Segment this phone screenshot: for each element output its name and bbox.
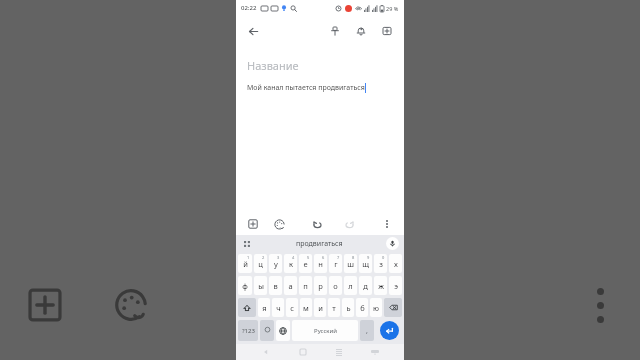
button[interactable]: з <box>374 254 387 273</box>
button[interactable]: к <box>284 254 297 273</box>
staticText: 3 <box>277 255 280 260</box>
staticText: р <box>318 281 323 291</box>
button[interactable]: Archive <box>377 21 397 41</box>
button[interactable]: н <box>314 254 327 273</box>
staticText: а <box>288 281 293 291</box>
staticText: Русский <box>314 327 337 335</box>
staticText: 0 <box>382 255 385 260</box>
button[interactable]: а <box>284 276 297 295</box>
button[interactable]: Change colour <box>270 215 288 233</box>
button[interactable]: Space <box>292 320 358 341</box>
staticText: о <box>333 281 338 291</box>
staticText: 9 <box>367 255 370 260</box>
button[interactable]: э <box>389 276 402 295</box>
staticText: ч <box>276 303 281 313</box>
button[interactable]: ю <box>370 298 382 317</box>
button[interactable]: в <box>269 276 282 295</box>
button[interactable]: Pin note <box>325 21 345 41</box>
staticText: з <box>379 259 383 269</box>
staticText: у <box>274 259 278 269</box>
button[interactable]: Add item <box>244 215 262 233</box>
button[interactable]: Home <box>296 345 310 359</box>
button[interactable]: о <box>329 276 342 295</box>
button[interactable]: Add <box>22 282 68 328</box>
staticText: к <box>289 259 293 269</box>
button[interactable]: б <box>356 298 368 317</box>
button[interactable]: Numbers and symbols <box>238 320 258 341</box>
button[interactable]: д <box>359 276 372 295</box>
button[interactable]: й <box>238 254 252 273</box>
button[interactable]: ф <box>238 276 252 295</box>
staticText: п <box>303 281 308 291</box>
staticText: б <box>360 303 365 313</box>
staticText: продвигаться <box>296 239 343 249</box>
button[interactable]: Voice input <box>386 237 399 250</box>
button[interactable]: я <box>258 298 270 317</box>
button[interactable]: ь <box>342 298 354 317</box>
staticText: д <box>363 281 368 291</box>
staticText: ю <box>373 303 379 313</box>
button[interactable]: Palette <box>108 282 154 328</box>
staticText: ц <box>258 259 263 269</box>
button[interactable]: г <box>329 254 342 273</box>
button[interactable]: Back <box>259 345 273 359</box>
staticText: 29 % <box>386 5 399 12</box>
button[interactable]: продвигаться <box>290 237 349 251</box>
button[interactable]: щ <box>359 254 372 273</box>
button[interactable]: Enter <box>380 321 399 340</box>
button[interactable]: Keyboard toolbar <box>241 238 253 250</box>
staticText: ь <box>346 303 351 313</box>
staticText: я <box>262 303 267 313</box>
button[interactable]: м <box>300 298 312 317</box>
button[interactable]: Period <box>360 320 374 341</box>
staticText: т <box>332 303 336 313</box>
staticText: 5 <box>307 255 310 260</box>
staticText: ?123 <box>242 327 255 335</box>
button[interactable]: и <box>314 298 326 317</box>
staticText: и <box>318 303 323 313</box>
button[interactable]: Hide keyboard <box>368 345 382 359</box>
button[interactable]: Shift <box>238 298 256 317</box>
staticText: щ <box>362 259 369 269</box>
staticText: 2 <box>262 255 265 260</box>
button[interactable]: ы <box>254 276 267 295</box>
staticText: л <box>348 281 353 291</box>
button[interactable]: Change language <box>276 320 290 341</box>
staticText: м <box>303 303 309 313</box>
staticText: х <box>394 259 398 269</box>
button[interactable]: Recent apps <box>332 345 346 359</box>
staticText: е <box>303 259 308 269</box>
staticText: ф <box>242 281 248 291</box>
button[interactable]: Add reminder <box>351 21 371 41</box>
staticText: й <box>243 259 248 269</box>
button[interactable]: у <box>269 254 282 273</box>
button[interactable]: ш <box>344 254 357 273</box>
button[interactable]: т <box>328 298 340 317</box>
staticText: э <box>394 281 398 291</box>
button[interactable]: п <box>299 276 312 295</box>
button[interactable]: Undo <box>308 215 326 233</box>
staticText: ы <box>258 281 264 291</box>
button[interactable]: е <box>299 254 312 273</box>
staticText: 1 <box>247 255 250 260</box>
staticText: Название <box>247 58 299 73</box>
button[interactable]: ж <box>374 276 387 295</box>
staticText: 6 <box>322 255 325 260</box>
staticText: 7 <box>337 255 340 260</box>
button[interactable]: ч <box>272 298 284 317</box>
staticText: 4 <box>292 255 295 260</box>
button[interactable]: х <box>389 254 402 273</box>
staticText: 02:22 <box>241 4 257 12</box>
button[interactable]: Redo <box>340 215 358 233</box>
button[interactable]: Backspace <box>384 298 402 317</box>
staticText: в <box>273 281 278 291</box>
button[interactable]: Back <box>243 21 263 41</box>
staticText: г <box>334 259 338 269</box>
button[interactable]: р <box>314 276 327 295</box>
button[interactable]: с <box>286 298 298 317</box>
button[interactable]: Emoji <box>260 320 274 341</box>
button[interactable]: ц <box>254 254 267 273</box>
button[interactable]: л <box>344 276 357 295</box>
staticText: , <box>366 326 368 336</box>
button[interactable]: More options <box>378 215 396 233</box>
